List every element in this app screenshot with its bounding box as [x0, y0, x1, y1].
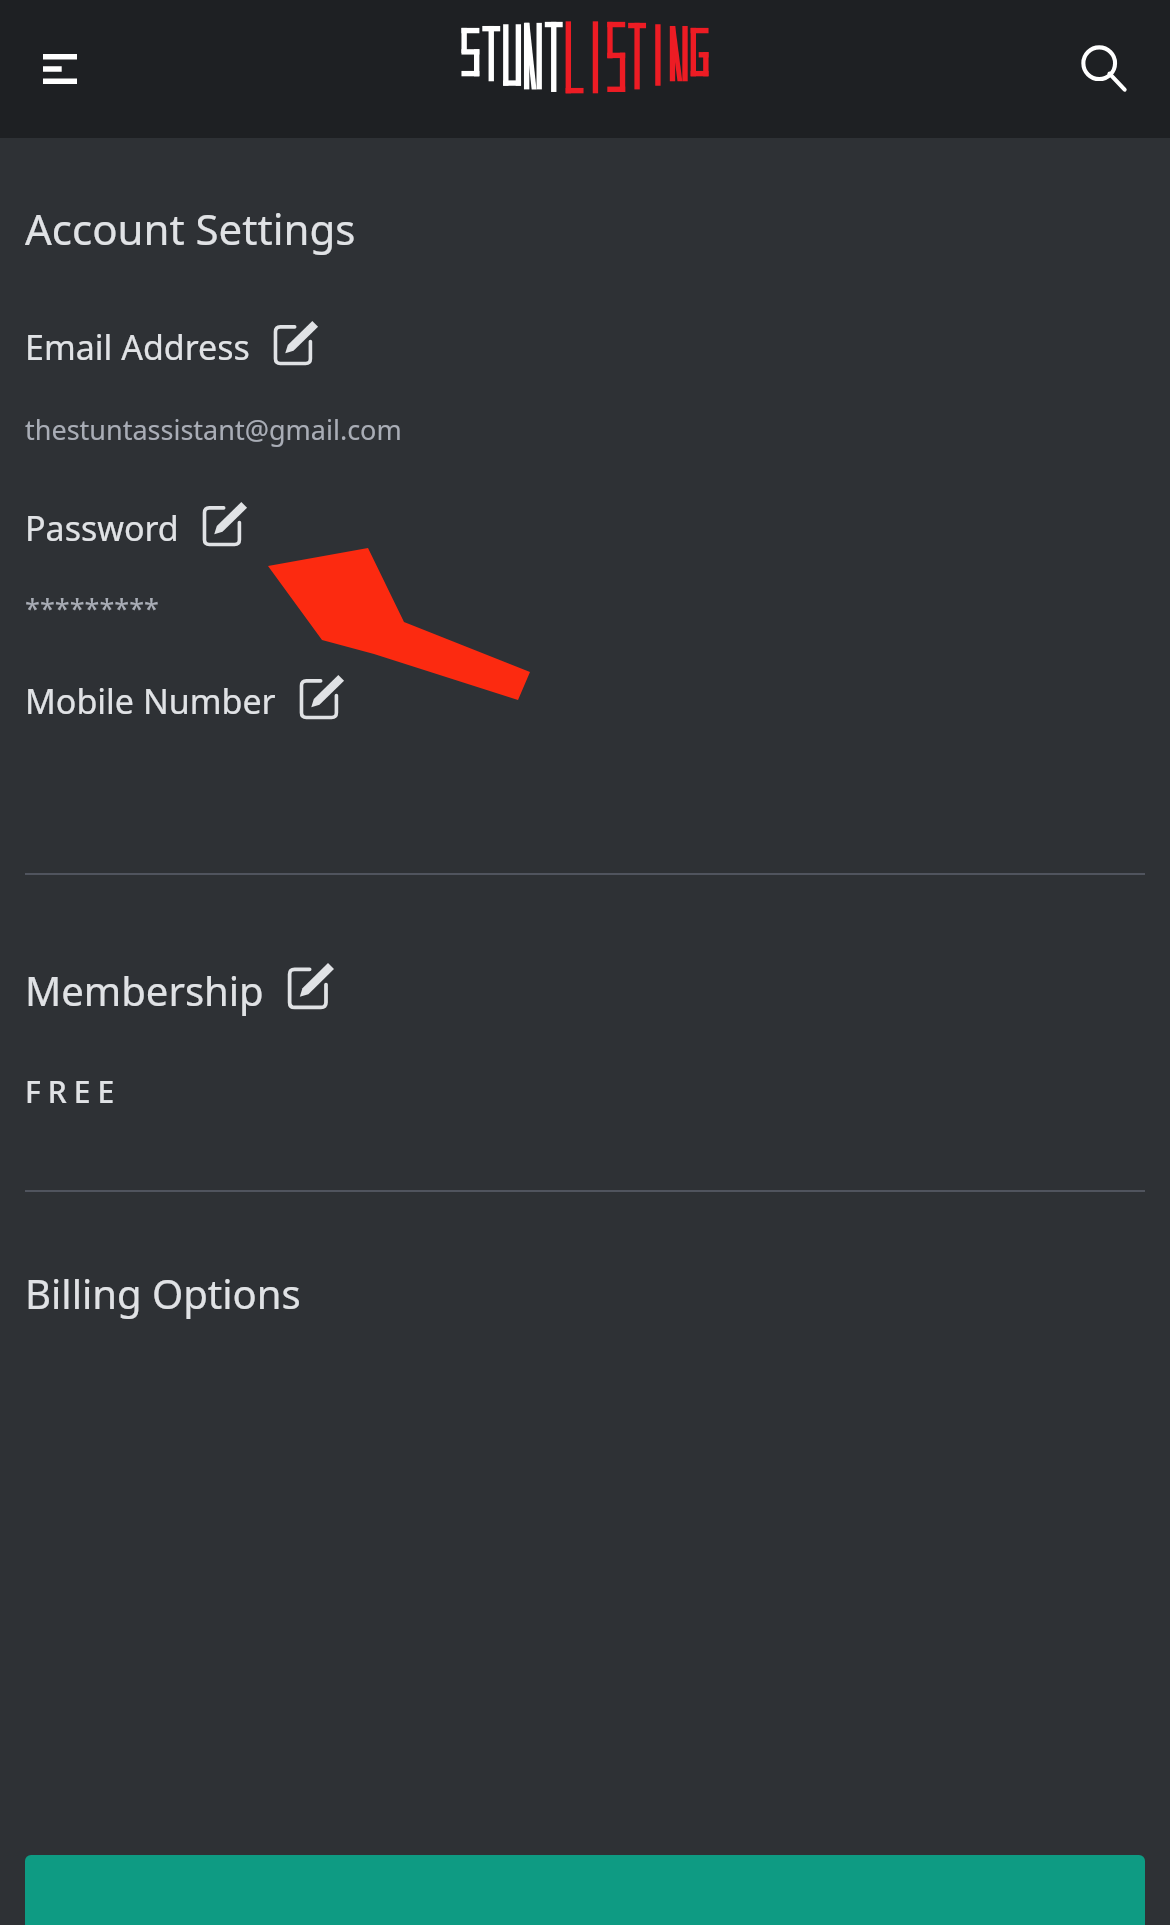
- button[interactable]: Billing Options: [25, 1266, 301, 1320]
- button[interactable]: Edit email address: [272, 319, 320, 367]
- button[interactable]: Membership: [25, 963, 336, 1017]
- button[interactable]: Menu: [22, 31, 98, 107]
- staticText: thestuntassistant@gmail.com: [25, 411, 402, 448]
- staticText: *********: [25, 590, 159, 627]
- staticText: FREE: [25, 1071, 122, 1112]
- button[interactable]: [460, 19, 710, 95]
- button[interactable]: Email Address: [25, 323, 320, 371]
- button[interactable]: Password: [25, 504, 249, 552]
- staticText: Membership: [25, 963, 264, 1017]
- button[interactable]: Search: [1064, 29, 1144, 109]
- button[interactable]: Account Settings: [25, 200, 356, 257]
- staticText: Mobile Number: [25, 678, 276, 724]
- button[interactable]: Edit membership: [286, 961, 336, 1011]
- staticText: Password: [25, 505, 179, 551]
- button[interactable]: Edit mobile number: [298, 673, 346, 721]
- button[interactable]: Edit password: [201, 500, 249, 548]
- staticText: Email Address: [25, 324, 250, 370]
- button[interactable]: Mobile Number: [25, 677, 346, 725]
